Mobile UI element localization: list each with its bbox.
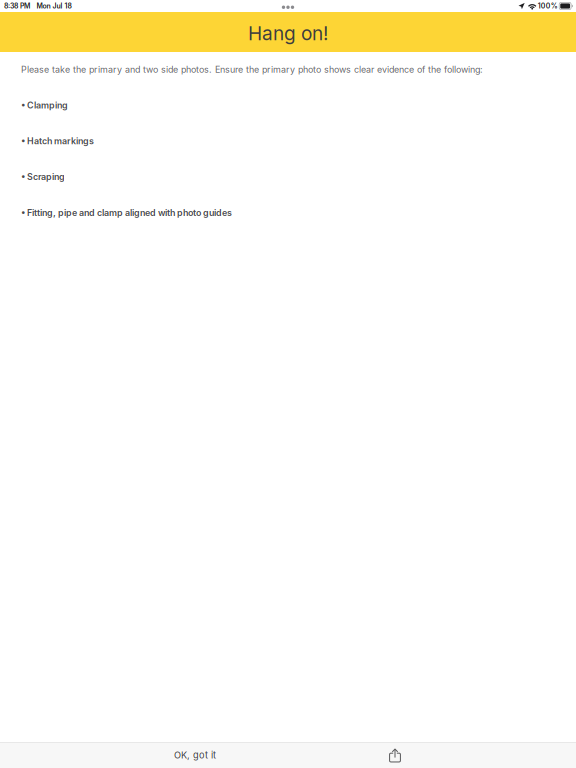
staticText: • Fitting, pipe and clamp aligned with p… <box>21 207 232 218</box>
staticText: 8:38 PM <box>4 2 30 10</box>
staticText: 100% <box>538 2 558 10</box>
staticText: • Hatch markings <box>21 136 94 146</box>
staticText: Mon Jul 18 <box>36 2 71 10</box>
staticText: • Clamping <box>21 100 68 111</box>
staticText: OK, got it <box>174 750 216 761</box>
staticText: Please take the primary and two side pho… <box>21 64 483 75</box>
button[interactable]: Share <box>379 742 411 768</box>
button[interactable]: OK, got it <box>162 742 228 768</box>
staticText: • Scraping <box>21 171 65 182</box>
staticText: Hang on! <box>248 22 328 45</box>
